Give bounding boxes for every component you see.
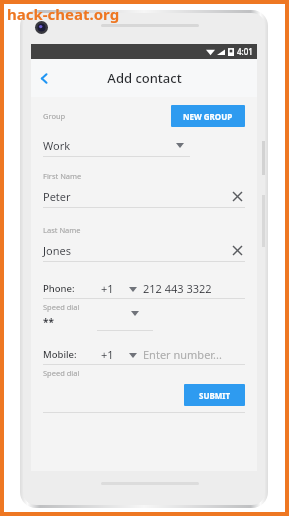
staticText: +1 — [101, 347, 114, 362]
staticText: 212 443 3322 — [143, 281, 212, 296]
staticText: Mobile: — [43, 348, 77, 361]
staticText: SUBMIT — [199, 390, 231, 401]
staticText: hack-cheat.org — [7, 4, 120, 24]
button[interactable]: Clear Last Name — [229, 242, 245, 258]
button[interactable]: Jones — [43, 241, 245, 259]
staticText: Work — [43, 138, 71, 153]
staticText: First Name — [43, 171, 82, 181]
staticText: +1 — [101, 281, 114, 296]
button[interactable]: Phone: — [43, 278, 245, 298]
staticText: Speed dial — [43, 302, 80, 312]
button[interactable]: NEW GROUP — [171, 105, 245, 127]
staticText: Jones — [43, 243, 71, 258]
button[interactable]: Mobile: — [43, 344, 245, 364]
staticText: Peter — [43, 189, 71, 204]
staticText: Speed dial — [43, 368, 80, 378]
button[interactable]: Clear First Name — [229, 188, 245, 204]
button[interactable]: Peter — [43, 187, 245, 205]
button[interactable]: SUBMIT — [184, 384, 245, 406]
staticText: 4:01 — [237, 46, 253, 57]
staticText: NEW GROUP — [183, 111, 233, 122]
staticText: ** — [43, 315, 54, 329]
button[interactable]: Back — [31, 65, 57, 91]
staticText: Group — [43, 111, 66, 121]
staticText: Phone: — [43, 282, 75, 295]
button[interactable]: Work — [43, 134, 190, 156]
staticText: Last Name — [43, 225, 81, 235]
staticText: Enter number... — [143, 347, 222, 362]
staticText: Add contact — [107, 69, 182, 87]
